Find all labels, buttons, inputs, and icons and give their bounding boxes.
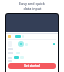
staticText: Easy and quick bbox=[19, 1, 45, 6]
button[interactable] bbox=[8, 35, 56, 38]
button[interactable]: Get started bbox=[8, 63, 56, 69]
button[interactable] bbox=[8, 60, 56, 62]
staticText: Get started bbox=[24, 64, 40, 68]
button[interactable] bbox=[18, 41, 24, 47]
button[interactable] bbox=[8, 56, 56, 59]
staticText: data input bbox=[23, 6, 42, 11]
button[interactable] bbox=[53, 43, 55, 45]
button[interactable] bbox=[8, 52, 56, 54]
button[interactable] bbox=[8, 48, 56, 50]
